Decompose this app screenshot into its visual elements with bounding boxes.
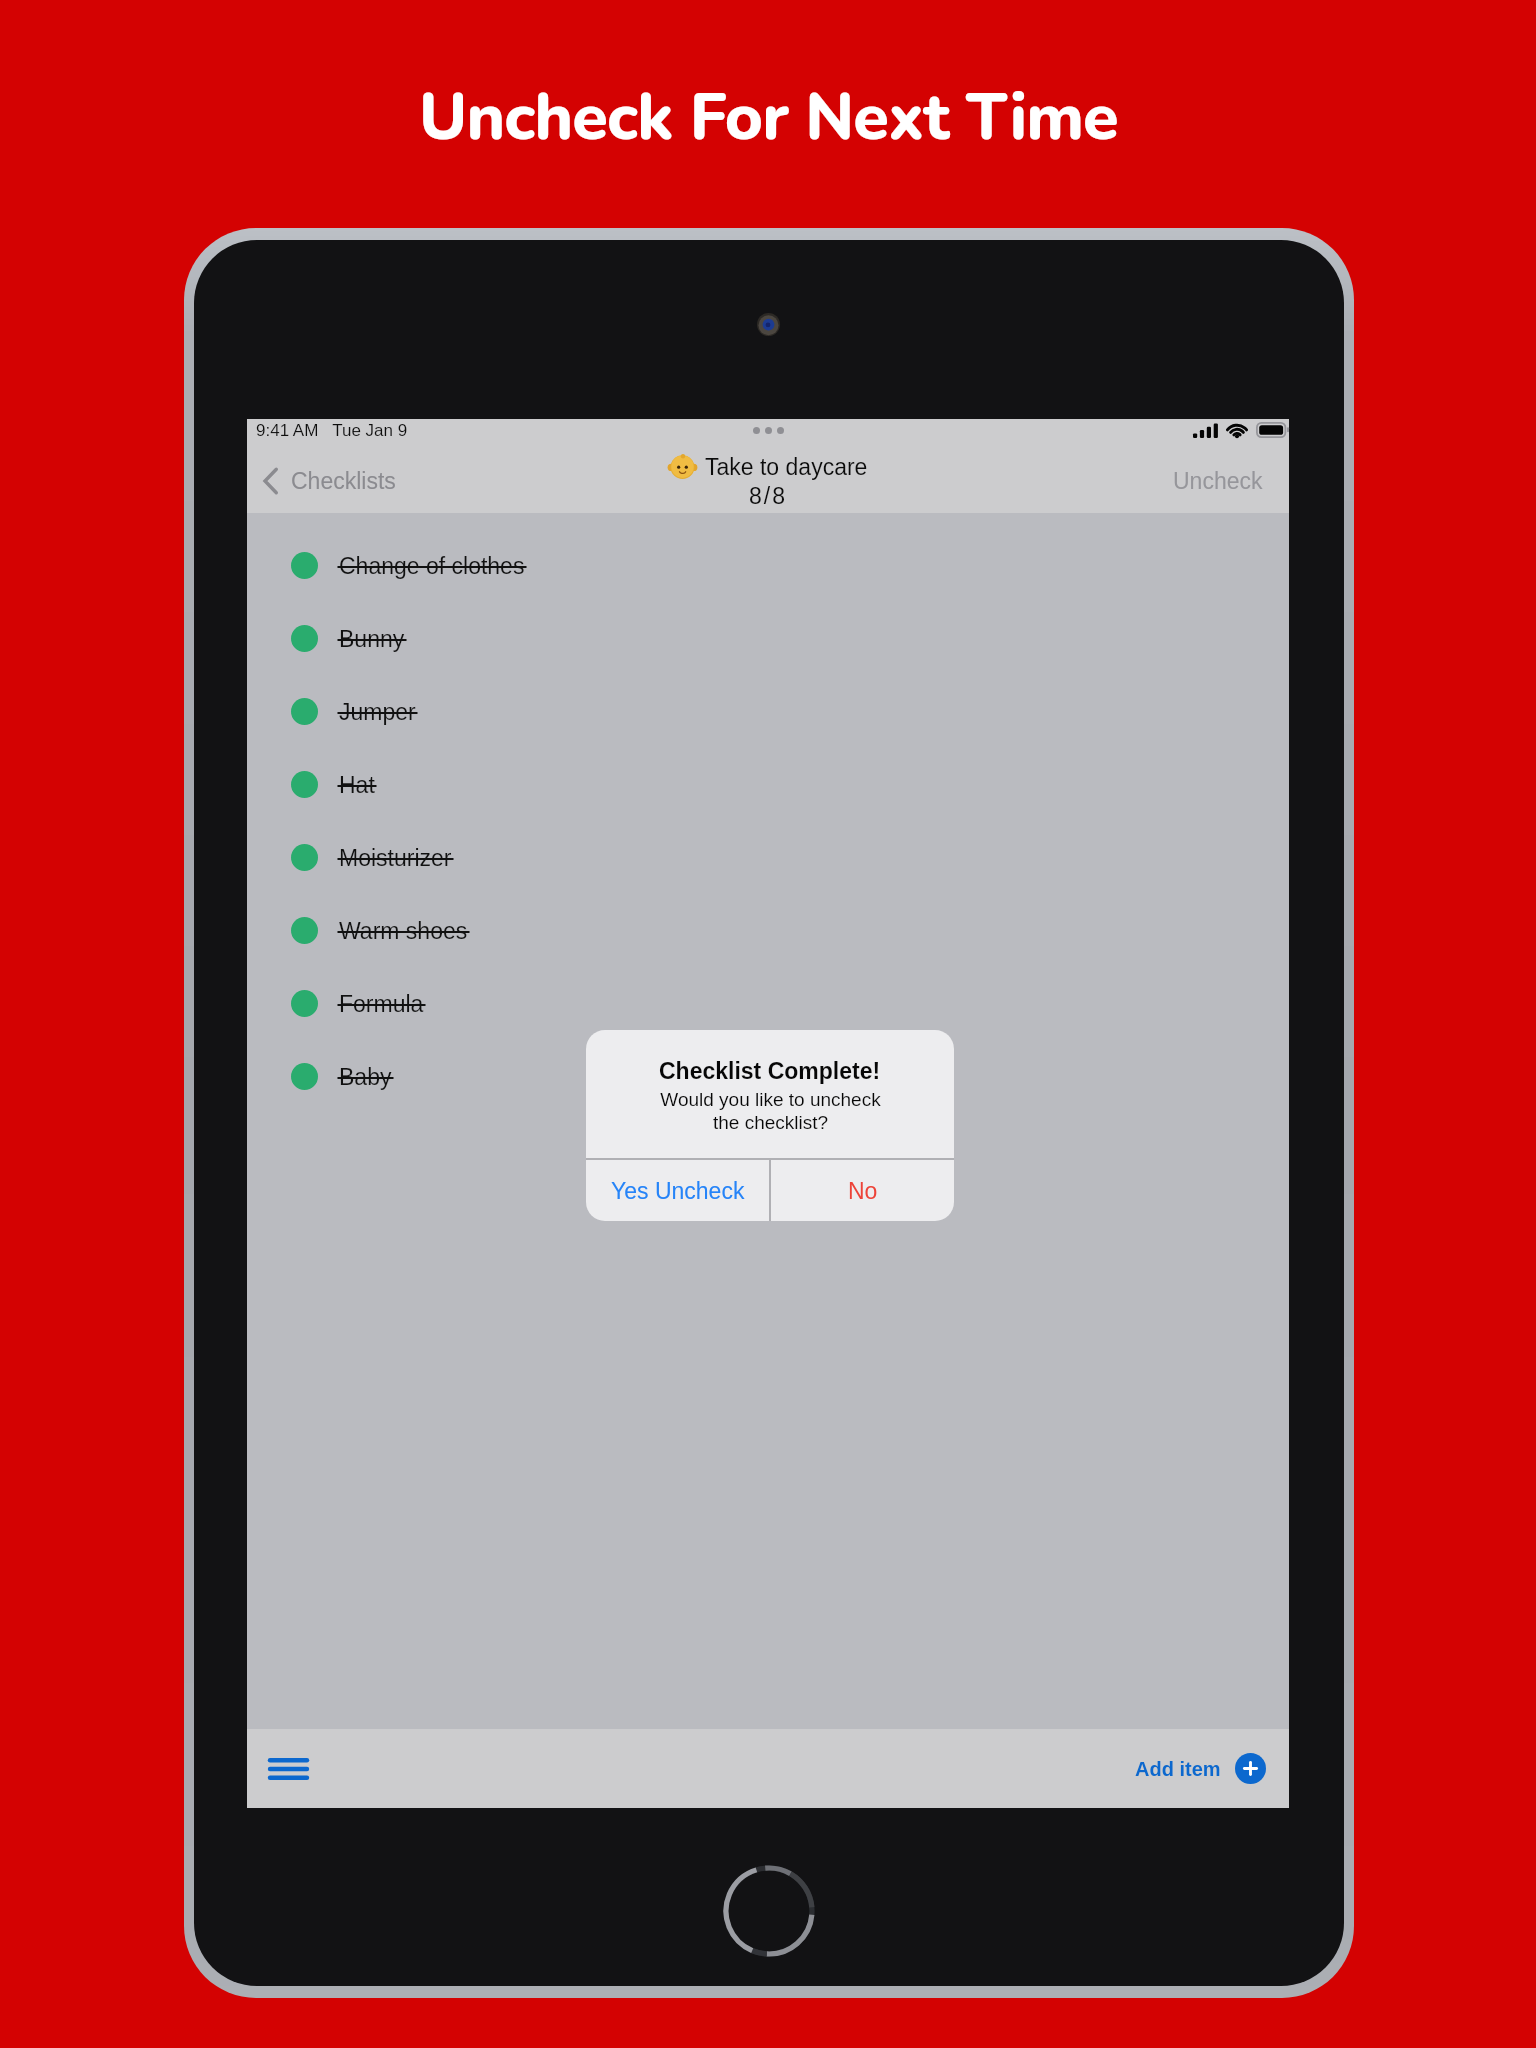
staticText: Formula xyxy=(339,991,424,1017)
button[interactable]: Hat xyxy=(247,748,1289,821)
staticText: No xyxy=(848,1178,878,1204)
button[interactable]: Bunny xyxy=(247,602,1289,675)
button[interactable]: Yes Uncheck xyxy=(586,1160,769,1221)
button[interactable]: No xyxy=(771,1160,954,1221)
staticText: Warm shoes xyxy=(339,918,468,944)
staticText: Would you like to uncheck the checklist? xyxy=(660,1089,881,1133)
staticText: 9:41 AM Tue Jan 9 xyxy=(256,421,408,440)
button[interactable]: Formula xyxy=(247,967,1289,1040)
staticText: 8/8 xyxy=(749,483,787,509)
staticText: Add item xyxy=(1135,1758,1221,1780)
staticText: Jumper xyxy=(339,699,416,725)
staticText: Take to daycare xyxy=(705,454,868,480)
button[interactable]: Uncheck xyxy=(1155,460,1289,502)
staticText: Yes Uncheck xyxy=(611,1178,745,1204)
staticText: Baby xyxy=(339,1064,392,1090)
staticText: Bunny xyxy=(339,626,405,652)
button[interactable]: Checklists xyxy=(247,461,406,501)
button[interactable]: Moisturizer xyxy=(247,821,1289,894)
button[interactable]: Warm shoes xyxy=(247,894,1289,967)
staticText: Change of clothes xyxy=(339,553,525,579)
button[interactable]: Jumper xyxy=(247,675,1289,748)
button[interactable]: Add item xyxy=(1121,1743,1289,1794)
staticText: Checklist Complete! xyxy=(659,1058,881,1084)
staticText: Moisturizer xyxy=(339,845,452,871)
button[interactable]: Menu xyxy=(259,1745,317,1793)
button[interactable]: Change of clothes xyxy=(247,529,1289,602)
staticText: Hat xyxy=(339,772,375,798)
button[interactable]: Baby xyxy=(247,1040,1289,1113)
staticText: Checklists xyxy=(291,468,396,494)
staticText: Uncheck For Next Time xyxy=(419,73,1118,162)
